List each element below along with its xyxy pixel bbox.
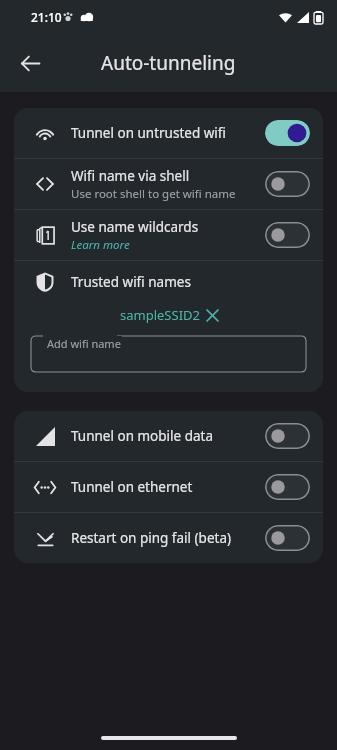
staticText: Use name wildcards xyxy=(71,218,199,236)
staticText: Restart on ping fail (beta) xyxy=(71,529,232,547)
button[interactable]: On xyxy=(265,120,310,146)
button[interactable]: Wifi name via shell xyxy=(14,159,323,209)
staticText: Wifi name via shell xyxy=(71,167,190,185)
button[interactable]: Tunnel on untrusted wifi xyxy=(14,108,323,158)
button[interactable]: Restart on ping fail (beta) xyxy=(14,513,323,563)
button[interactable]: Off xyxy=(265,423,310,449)
other: Remove sampleSSID2 xyxy=(207,310,218,321)
staticText: Add wifi name xyxy=(47,336,121,351)
button[interactable]: Tunnel on ethernet xyxy=(14,462,323,512)
button[interactable]: Off xyxy=(265,525,310,551)
button[interactable]: Use name wildcards xyxy=(14,210,323,260)
button[interactable]: Off xyxy=(265,222,310,248)
staticText: Tunnel on ethernet xyxy=(71,478,193,496)
button[interactable]: Off xyxy=(265,474,310,500)
staticText: Tunnel on untrusted wifi xyxy=(71,124,226,142)
button[interactable]: Back xyxy=(8,41,52,85)
staticText: Auto-tunneling xyxy=(101,50,236,76)
button[interactable]: Tunnel on mobile data xyxy=(14,411,323,461)
staticText: Learn more xyxy=(71,237,130,253)
staticText: Trusted wifi names xyxy=(71,273,191,291)
staticText: 21:10 xyxy=(31,9,62,25)
button[interactable]: sampleSSID2 xyxy=(120,306,218,324)
staticText: Use root shell to get wifi name xyxy=(71,186,236,202)
staticText: Tunnel on mobile data xyxy=(71,427,213,445)
button[interactable]: Off xyxy=(265,171,310,197)
staticText: sampleSSID2 xyxy=(120,306,200,324)
button[interactable]: Add wifi name xyxy=(31,336,306,372)
